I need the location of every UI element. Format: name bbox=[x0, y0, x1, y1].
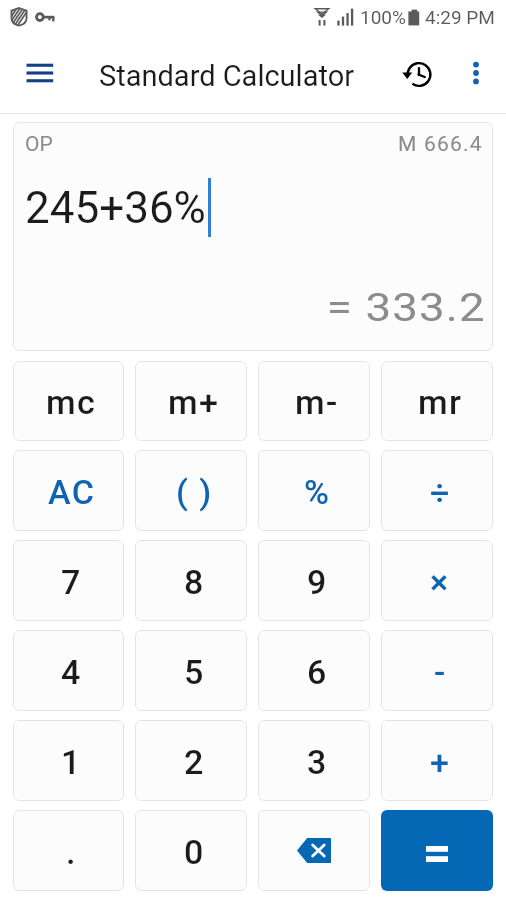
staticText: - bbox=[434, 652, 447, 692]
staticText: 100% bbox=[360, 6, 406, 28]
button[interactable]: ÷ bbox=[381, 450, 493, 531]
staticText: 8 bbox=[184, 562, 205, 602]
staticText: OP bbox=[25, 132, 53, 157]
button[interactable]: 6 bbox=[258, 630, 370, 711]
staticText: m- bbox=[295, 382, 339, 422]
staticText: M 666.4 bbox=[398, 132, 483, 157]
staticText: Standard Calculator bbox=[99, 59, 354, 93]
button[interactable] bbox=[381, 810, 493, 891]
staticText: 3 bbox=[307, 742, 328, 782]
button[interactable]: 7 bbox=[13, 540, 124, 621]
button[interactable]: + bbox=[381, 720, 493, 801]
button[interactable]: % bbox=[258, 450, 370, 531]
staticText: 6 bbox=[307, 652, 328, 692]
staticText: ( ) bbox=[176, 472, 213, 512]
button[interactable]: 2 bbox=[135, 720, 247, 801]
staticText: 245+36% bbox=[25, 182, 206, 234]
staticText: 5 bbox=[184, 652, 205, 692]
button[interactable]: 8 bbox=[135, 540, 247, 621]
staticText: × bbox=[430, 562, 450, 602]
button[interactable]: - bbox=[381, 630, 493, 711]
staticText: 7 bbox=[61, 562, 82, 602]
staticText: % bbox=[304, 472, 331, 512]
staticText: 0 bbox=[184, 832, 205, 872]
staticText: AC bbox=[48, 472, 96, 512]
button[interactable]: . bbox=[13, 810, 124, 891]
staticText: + bbox=[430, 742, 451, 782]
button[interactable]: History bbox=[395, 55, 439, 99]
staticText: mr bbox=[418, 382, 463, 422]
staticText: 1 bbox=[61, 742, 82, 782]
button[interactable]: ( ) bbox=[135, 450, 247, 531]
button[interactable]: AC bbox=[13, 450, 124, 531]
button[interactable]: × bbox=[381, 540, 493, 621]
staticText: 4 bbox=[61, 652, 82, 692]
button[interactable]: m+ bbox=[135, 361, 247, 441]
button[interactable]: 0 bbox=[135, 810, 247, 891]
staticText: 2 bbox=[184, 742, 205, 782]
staticText: . bbox=[66, 832, 77, 872]
staticText: = 333.2 bbox=[327, 285, 487, 331]
staticText: m+ bbox=[168, 382, 220, 422]
button[interactable]: More options bbox=[454, 55, 498, 99]
staticText: 4:29 PM bbox=[425, 6, 495, 28]
staticText: ÷ bbox=[430, 472, 451, 512]
button[interactable]: Menu bbox=[6, 53, 54, 101]
button[interactable]: 9 bbox=[258, 540, 370, 621]
button[interactable]: 1 bbox=[13, 720, 124, 801]
button[interactable]: m- bbox=[258, 361, 370, 441]
staticText: 9 bbox=[307, 562, 328, 602]
button[interactable]: 3 bbox=[258, 720, 370, 801]
staticText: mc bbox=[46, 382, 97, 422]
button[interactable]: 5 bbox=[135, 630, 247, 711]
button[interactable]: Backspace bbox=[258, 810, 370, 891]
button[interactable]: mc bbox=[13, 361, 124, 441]
button[interactable]: mr bbox=[381, 361, 493, 441]
button[interactable]: 4 bbox=[13, 630, 124, 711]
